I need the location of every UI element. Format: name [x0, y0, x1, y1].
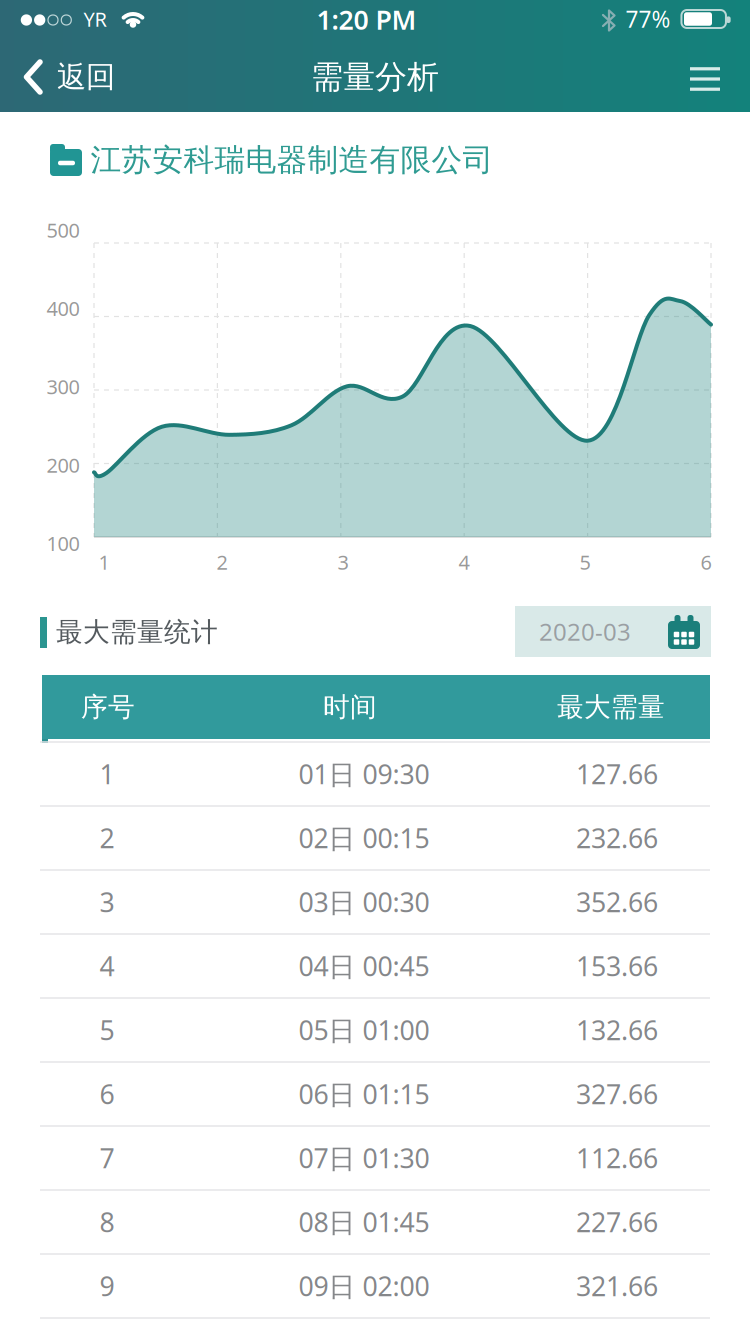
staticText: 321.66: [576, 1268, 658, 1304]
staticText: 232.66: [576, 820, 658, 856]
staticText: 100: [46, 530, 79, 556]
staticText: 1: [99, 756, 114, 792]
staticText: 200: [46, 452, 79, 478]
staticText: 09日 02:00: [298, 1268, 429, 1304]
staticText: 77%: [625, 4, 670, 34]
staticText: 2: [99, 820, 114, 856]
staticText: 最大需量统计: [56, 616, 218, 648]
staticText: 04日 00:45: [298, 948, 429, 984]
staticText: 03日 00:30: [298, 884, 429, 920]
staticText: 02日 00:15: [298, 820, 429, 856]
staticText: 3: [99, 884, 114, 920]
staticText: 08日 01:45: [298, 1204, 429, 1240]
staticText: 132.66: [576, 1012, 658, 1048]
staticText: 9: [99, 1268, 114, 1304]
staticText: 400: [46, 295, 79, 322]
staticText: 最大需量: [557, 691, 665, 723]
staticText: 300: [46, 373, 79, 400]
button[interactable]: 2020-03: [515, 606, 711, 657]
staticText: 153.66: [576, 948, 658, 984]
staticText: 327.66: [576, 1076, 658, 1112]
staticText: 352.66: [576, 884, 658, 920]
staticText: 时间: [323, 691, 377, 723]
staticText: 4: [99, 948, 114, 984]
staticText: 1:20 PM: [316, 2, 416, 37]
staticText: 5: [579, 549, 590, 575]
staticText: 2: [216, 549, 227, 575]
staticText: 需量分析: [311, 57, 439, 97]
staticText: 227.66: [576, 1204, 658, 1240]
staticText: 返回: [57, 59, 115, 95]
staticText: 2020-03: [539, 616, 631, 647]
staticText: 127.66: [576, 756, 658, 792]
staticText: 7: [99, 1140, 114, 1176]
staticText: 05日 01:00: [298, 1012, 429, 1048]
staticText: 500: [46, 217, 79, 243]
staticText: 5: [99, 1012, 114, 1048]
staticText: 6: [99, 1076, 114, 1112]
staticText: 112.66: [576, 1140, 658, 1176]
staticText: 江苏安科瑞电器制造有限公司: [90, 141, 493, 179]
button[interactable]: Menu: [681, 55, 729, 103]
staticText: 8: [99, 1204, 114, 1240]
staticText: 01日 09:30: [298, 756, 429, 792]
staticText: 4: [458, 549, 469, 575]
staticText: 06日 01:15: [298, 1076, 429, 1112]
staticText: 07日 01:30: [298, 1140, 429, 1176]
staticText: 1: [98, 549, 109, 575]
staticText: 6: [700, 549, 711, 575]
staticText: 序号: [81, 691, 135, 723]
staticText: YR: [83, 6, 106, 32]
button[interactable]: 返回: [25, 59, 115, 95]
staticText: 3: [337, 549, 348, 575]
